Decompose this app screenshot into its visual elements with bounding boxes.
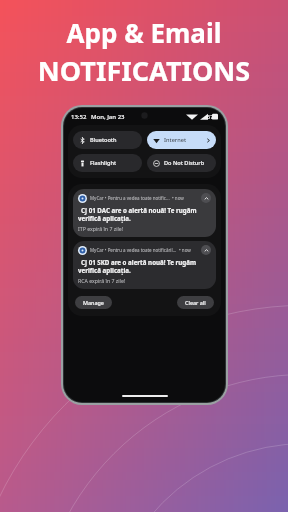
button[interactable]: Collapse notification [201, 193, 211, 203]
button[interactable]: Manage [75, 296, 112, 309]
staticText: • now [172, 195, 184, 201]
button[interactable]: Do Not Disturb [147, 154, 216, 172]
button[interactable]: MyCar • Pentru a vedea toate notific... [73, 189, 216, 237]
staticText: CJ 01 SKD are o alertă nouă! Te rugăm [81, 258, 196, 266]
staticText: Internet [164, 136, 187, 144]
staticText: MyCar • Pentru a vedea toate notific... [90, 195, 170, 201]
staticText: CJ 01 DAC are o alertă nouă! Te rugăm [81, 206, 197, 214]
staticText: • now [179, 247, 191, 253]
staticText: MyCar • Pentru a vedea toate notificăril… [90, 247, 177, 253]
button[interactable]: Flashlight [73, 154, 142, 172]
button[interactable]: Internet [147, 131, 216, 149]
button[interactable]: Bluetooth [73, 131, 142, 149]
staticText: Clear all [185, 299, 206, 306]
staticText: verifică aplicația. [78, 266, 131, 274]
staticText: 13:52 [71, 113, 87, 121]
staticText: Do Not Disturb [164, 159, 205, 167]
staticText: RCA expiră în 7 zile! [78, 277, 126, 284]
staticText: Manage [83, 299, 104, 306]
staticText: 57% [207, 113, 219, 121]
staticText: Mon, Jan 23 [91, 113, 125, 121]
staticText: App & Email [10, 15, 278, 50]
button[interactable]: MyCar • Pentru a vedea toate notificăril… [73, 241, 216, 289]
button[interactable]: Clear all [177, 296, 214, 309]
button[interactable]: Collapse notification [201, 245, 211, 255]
staticText: ITP expiră în 7 zile! [78, 225, 124, 232]
staticText: NOTIFICATIONS [10, 52, 278, 89]
staticText: Flashlight [90, 159, 117, 167]
staticText: Bluetooth [90, 136, 117, 144]
staticText: verifică aplicația. [78, 214, 131, 222]
